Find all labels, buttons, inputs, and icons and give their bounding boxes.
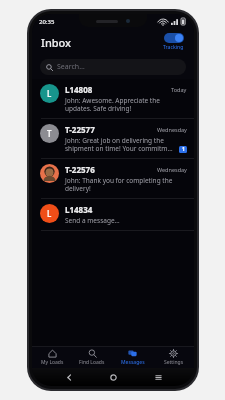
- staticText: L14834: [65, 204, 93, 215]
- staticText: My Loads: [41, 359, 64, 366]
- staticText: Tracking: [163, 44, 184, 51]
- staticText: John: Awesome. Appreciate the updates. S…: [65, 96, 187, 113]
- button[interactable]: Home: [105, 369, 121, 385]
- button[interactable]: Recent apps: [150, 369, 166, 385]
- staticText: Inbox: [41, 35, 72, 50]
- button[interactable]: L: [32, 199, 194, 230]
- staticText: Today: [171, 86, 187, 93]
- staticText: Send a message…: [65, 216, 120, 225]
- staticText: Search…: [57, 62, 85, 72]
- staticText: T: [47, 128, 52, 139]
- button[interactable]: L: [32, 79, 194, 118]
- staticText: L14808: [65, 84, 93, 95]
- staticText: Settings: [164, 359, 184, 366]
- staticText: T-22577: [65, 124, 95, 135]
- button[interactable]: My Loads: [32, 346, 72, 368]
- button[interactable]: T: [32, 119, 194, 158]
- button[interactable]: Messages: [112, 346, 153, 368]
- staticText: T-22576: [65, 164, 95, 175]
- staticText: Find Loads: [79, 359, 105, 366]
- button[interactable]: Search…: [40, 59, 186, 75]
- staticText: 20:35: [39, 18, 55, 26]
- button[interactable]: Settings: [153, 346, 194, 368]
- staticText: John: Great job on delivering the shipme…: [65, 136, 176, 153]
- staticText: Wednesday: [157, 166, 187, 173]
- staticText: 1: [182, 146, 185, 153]
- staticText: L: [47, 88, 52, 99]
- button[interactable]: Find Loads: [72, 346, 112, 368]
- button[interactable]: T-22576: [32, 159, 194, 198]
- staticText: L: [47, 208, 52, 219]
- staticText: John: Thank you for completing the deliv…: [65, 176, 187, 193]
- button[interactable]: Tracking toggle: [161, 32, 186, 52]
- staticText: Messages: [121, 359, 145, 366]
- staticText: Wednesday: [157, 126, 187, 133]
- button[interactable]: Back: [61, 369, 77, 385]
